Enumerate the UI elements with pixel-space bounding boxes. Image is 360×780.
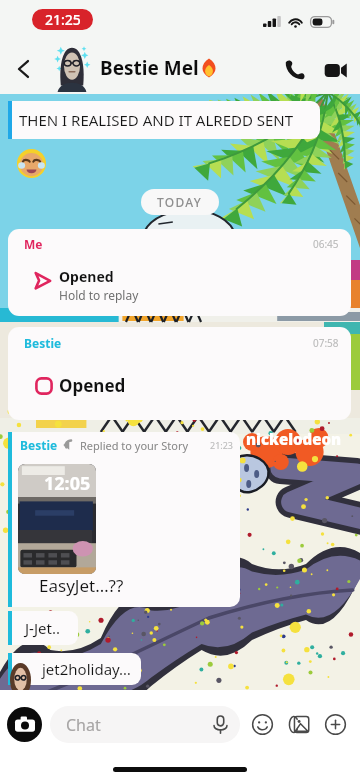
staticText: Bestie	[24, 335, 62, 351]
staticText: nickelodeon	[246, 429, 342, 449]
button[interactable]: Photos	[286, 711, 313, 738]
staticText: Replied to your Story	[80, 438, 189, 453]
staticText: 06:45	[313, 237, 339, 251]
staticText: J-Jet..	[25, 618, 60, 638]
staticText: THEN I REALISED AND IT ALREDD SENT	[19, 110, 294, 130]
button[interactable]: TODAY	[141, 189, 219, 215]
button[interactable]: Me	[8, 229, 351, 316]
staticText: 07:58	[313, 336, 339, 350]
button[interactable]: More	[322, 711, 349, 738]
staticText: EasyJet…??	[39, 574, 124, 597]
button[interactable]: Back	[6, 51, 42, 87]
button[interactable]: Camera	[7, 707, 42, 742]
button[interactable]: Bestie	[12, 432, 240, 607]
staticText: Bestie Mel	[100, 55, 199, 81]
button[interactable]: Bestie	[8, 327, 351, 420]
button[interactable]: Chat	[50, 706, 240, 743]
staticText: Bestie	[20, 437, 58, 453]
staticText: Hold to replay	[59, 287, 139, 303]
staticText: 21:23	[210, 439, 234, 451]
staticText: TODAY	[157, 194, 203, 210]
staticText: jet2holiday…	[42, 659, 131, 679]
button[interactable]: Voice message	[207, 711, 234, 738]
button[interactable]: jet2holiday…	[12, 653, 141, 685]
button[interactable]: Stickers	[249, 711, 276, 738]
button[interactable]: J-Jet..	[12, 611, 78, 645]
button[interactable]: Video call	[317, 52, 353, 88]
staticText: Chat	[66, 714, 101, 736]
button[interactable]: Profile	[52, 45, 92, 92]
staticText: Me	[24, 236, 43, 252]
button[interactable]: Call	[277, 52, 313, 88]
button[interactable]: THEN I REALISED AND IT ALREDD SENT	[12, 101, 320, 139]
staticText: Opened	[59, 374, 126, 397]
staticText: 21:25	[45, 10, 81, 29]
staticText: 12:05	[44, 471, 91, 496]
staticText: Opened	[59, 267, 114, 286]
